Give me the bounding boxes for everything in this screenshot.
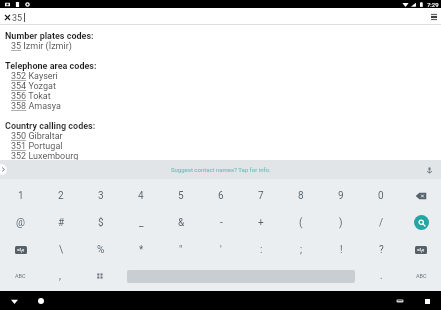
- button[interactable]: 8: [281, 182, 321, 209]
- button[interactable]: &: [161, 209, 201, 236]
- staticText: =\<: [17, 247, 25, 253]
- button[interactable]: Symbols: [401, 236, 441, 263]
- staticText: 3: [98, 190, 104, 202]
- staticText: 7:29: [427, 1, 439, 8]
- button[interactable]: _: [121, 209, 161, 236]
- button[interactable]: 35 Izmir (İzmir): [0, 41, 441, 51]
- button[interactable]: Expand suggestions: [0, 164, 7, 175]
- button[interactable]: Home: [34, 294, 48, 308]
- button[interactable]: *: [121, 236, 161, 263]
- staticText: ?: [379, 244, 384, 256]
- staticText: &: [178, 217, 185, 229]
- staticText: 352 Kayseri: [11, 71, 58, 81]
- button[interactable]: 6: [201, 182, 241, 209]
- staticText: 350 Gibraltar: [11, 131, 63, 141]
- button[interactable]: ABC: [401, 263, 441, 289]
- staticText: ": [179, 244, 183, 256]
- staticText: .: [380, 270, 383, 282]
- button[interactable]: Backspace: [401, 182, 441, 209]
- button[interactable]: 352 Luxembourg: [0, 151, 441, 160]
- staticText: 4: [138, 190, 144, 202]
- staticText: (: [299, 217, 303, 229]
- button[interactable]: 2: [41, 182, 81, 209]
- staticText: $: [98, 217, 104, 229]
- button[interactable]: 1: [0, 182, 41, 209]
- button[interactable]: ?: [361, 236, 401, 263]
- staticText: 6: [218, 190, 224, 202]
- staticText: ;: [300, 244, 303, 256]
- button[interactable]: 4: [121, 182, 161, 209]
- button[interactable]: More options: [427, 10, 440, 23]
- staticText: 7: [258, 190, 264, 202]
- button[interactable]: /: [361, 209, 401, 236]
- staticText: @: [16, 217, 25, 229]
- button[interactable]: ): [321, 209, 361, 236]
- button[interactable]: Voice input: [423, 164, 435, 176]
- button[interactable]: #: [41, 209, 81, 236]
- button[interactable]: Back: [7, 294, 21, 308]
- button[interactable]: \: [41, 236, 81, 263]
- staticText: -: [220, 217, 223, 229]
- button[interactable]: 356 Tokat: [0, 91, 441, 101]
- staticText: Number plates codes:: [5, 31, 94, 41]
- staticText: 1: [18, 190, 24, 202]
- staticText: Telephone area codes:: [5, 61, 97, 71]
- button[interactable]: ,: [40, 263, 80, 289]
- button[interactable]: Search: [401, 209, 441, 236]
- staticText: \: [59, 244, 64, 256]
- button[interactable]: :: [241, 236, 281, 263]
- staticText: 351 Portugal: [11, 141, 63, 151]
- button[interactable]: Keyboard indicator: [393, 294, 407, 308]
- staticText: 358 Amasya: [11, 101, 61, 111]
- button[interactable]: 5: [161, 182, 201, 209]
- staticText: :: [260, 244, 263, 256]
- button[interactable]: 3: [81, 182, 121, 209]
- button[interactable]: ': [201, 236, 241, 263]
- staticText: ABC: [416, 273, 427, 279]
- staticText: 354 Yozgat: [11, 81, 56, 91]
- button[interactable]: Clear search: [2, 12, 12, 22]
- button[interactable]: @: [0, 209, 41, 236]
- staticText: 35: [12, 13, 23, 24]
- button[interactable]: ;: [281, 236, 321, 263]
- button[interactable]: 0: [361, 182, 401, 209]
- staticText: +: [258, 217, 264, 229]
- staticText: =\<: [417, 247, 425, 253]
- staticText: 35 Izmir (İzmir): [11, 41, 72, 51]
- button[interactable]: %: [81, 236, 121, 263]
- staticText: ,: [59, 270, 61, 282]
- button[interactable]: Switch keyboard: [80, 263, 120, 289]
- staticText: /: [379, 217, 384, 229]
- button[interactable]: [120, 263, 361, 289]
- staticText: ABC: [15, 273, 26, 279]
- button[interactable]: +: [241, 209, 281, 236]
- button[interactable]: 352 Kayseri: [0, 71, 441, 81]
- staticText: Suggest contact names? Tap for info.: [171, 166, 271, 173]
- staticText: Country calling codes:: [5, 121, 96, 131]
- button[interactable]: Symbols: [0, 236, 41, 263]
- staticText: 2: [58, 190, 64, 202]
- staticText: 356 Tokat: [11, 91, 51, 101]
- staticText: 8: [298, 190, 304, 202]
- button[interactable]: 9: [321, 182, 361, 209]
- button[interactable]: ABC: [0, 263, 40, 289]
- staticText: 5: [178, 190, 184, 202]
- staticText: !: [340, 244, 343, 256]
- button[interactable]: Recents: [420, 294, 434, 308]
- button[interactable]: .: [361, 263, 401, 289]
- button[interactable]: 351 Portugal: [0, 141, 441, 151]
- button[interactable]: Suggest contact names? Tap for info.: [165, 163, 277, 176]
- staticText: %: [97, 244, 105, 256]
- button[interactable]: 354 Yozgat: [0, 81, 441, 91]
- staticText: _: [139, 217, 144, 229]
- staticText: 352 Luxembourg: [11, 151, 79, 160]
- button[interactable]: 7: [241, 182, 281, 209]
- button[interactable]: 358 Amasya: [0, 101, 441, 111]
- button[interactable]: (: [281, 209, 321, 236]
- staticText: #: [58, 217, 65, 229]
- button[interactable]: 350 Gibraltar: [0, 131, 441, 141]
- button[interactable]: $: [81, 209, 121, 236]
- button[interactable]: !: [321, 236, 361, 263]
- button[interactable]: ": [161, 236, 201, 263]
- button[interactable]: -: [201, 209, 241, 236]
